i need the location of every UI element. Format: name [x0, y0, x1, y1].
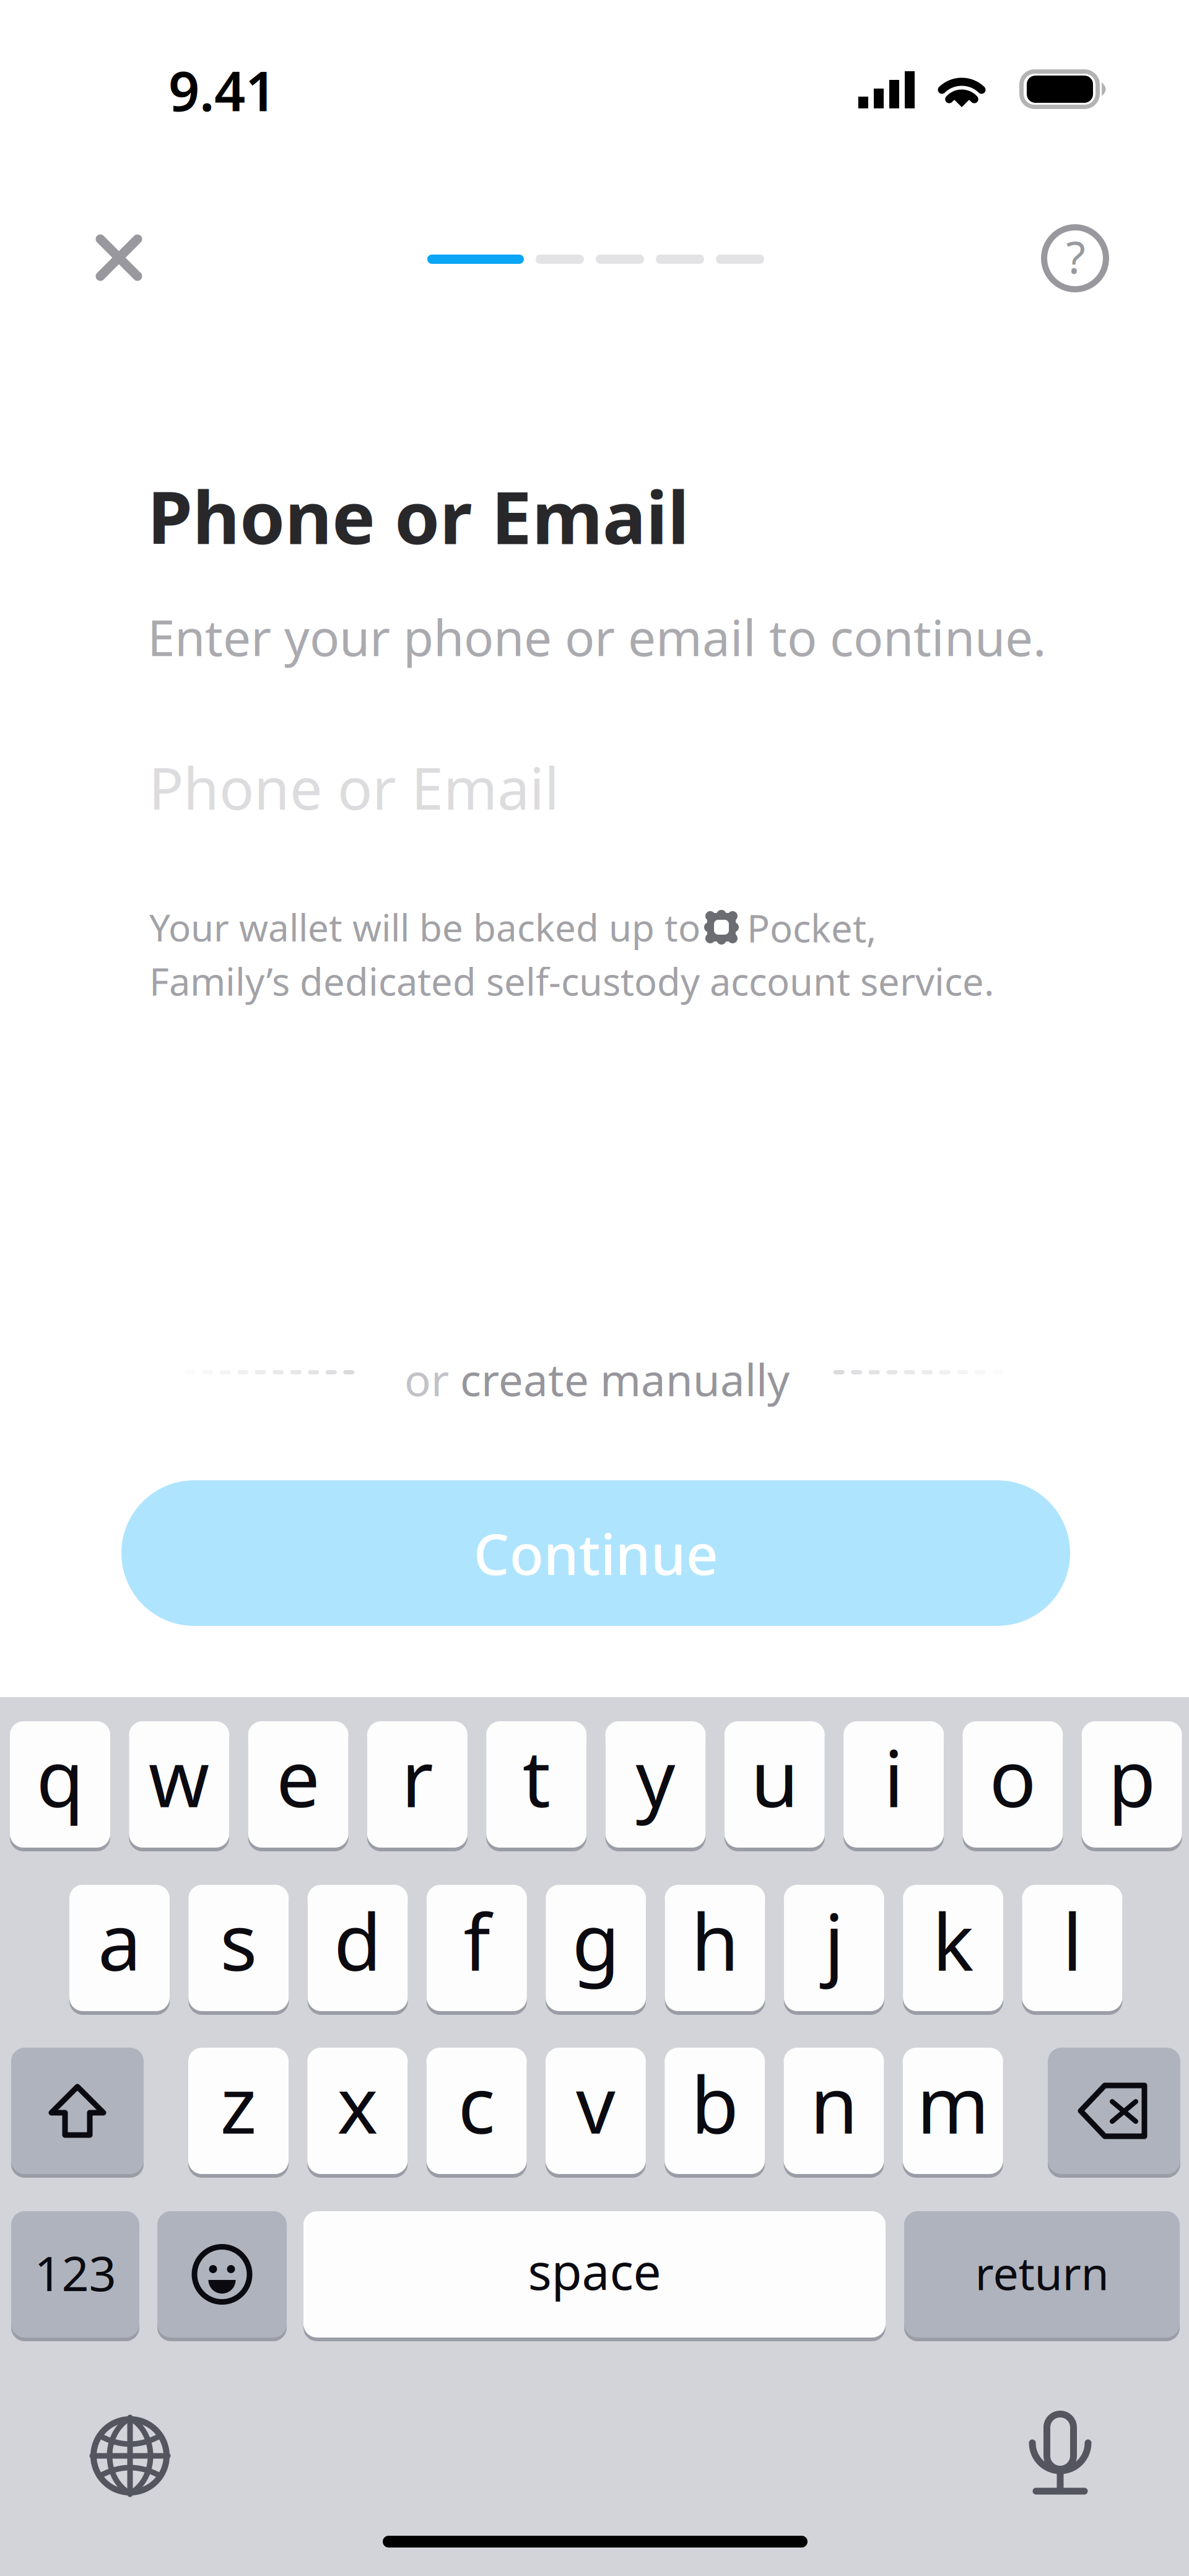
button[interactable]: Shift [11, 2048, 144, 2178]
staticText: l [1062, 1889, 1082, 1992]
staticText: g [572, 1889, 620, 1992]
staticText: f [463, 1889, 490, 1992]
button[interactable]: g [546, 1885, 646, 2015]
staticText: h [691, 1889, 739, 1992]
button[interactable]: s [188, 1885, 289, 2015]
staticText: space [528, 2238, 661, 2304]
button[interactable]: Phone or Email [0, 741, 1189, 834]
button[interactable]: r [367, 1721, 467, 1851]
staticText: r [401, 1725, 433, 1829]
staticText: c [458, 2052, 495, 2155]
staticText: or [404, 1350, 460, 1408]
staticText: Your wallet will be backed up to [149, 902, 700, 952]
staticText: return [975, 2242, 1109, 2303]
staticText: k [932, 1889, 974, 1992]
button[interactable]: m [903, 2048, 1003, 2178]
button[interactable]: x [307, 2048, 408, 2178]
staticText: Enter your phone or email to continue. [147, 604, 1046, 670]
button[interactable]: Help [1041, 224, 1109, 292]
staticText: p [1108, 1725, 1156, 1829]
staticText: Phone or Email [149, 749, 559, 826]
button[interactable]: d [308, 1885, 408, 2015]
staticText: m [917, 2052, 989, 2155]
staticText: s [220, 1889, 257, 1992]
button[interactable]: l [1022, 1885, 1122, 2015]
button[interactable]: o [963, 1721, 1063, 1851]
button[interactable]: c [426, 2048, 527, 2178]
button[interactable]: return [904, 2211, 1180, 2341]
button[interactable]: u [724, 1721, 825, 1851]
staticText: ? [1066, 227, 1085, 286]
staticText: t [522, 1725, 550, 1829]
button[interactable]: Dictation [1029, 2411, 1092, 2495]
button[interactable]: create manually [460, 1350, 790, 1408]
button[interactable]: k [903, 1885, 1003, 2015]
staticText: Pocket, [747, 902, 876, 953]
staticText: x [337, 2052, 378, 2155]
staticText: create manually [460, 1350, 790, 1408]
button[interactable]: space [303, 2211, 886, 2341]
staticText: j [824, 1889, 844, 1992]
staticText: q [36, 1725, 84, 1829]
staticText: n [810, 2052, 858, 2155]
button[interactable]: z [188, 2048, 289, 2178]
button[interactable]: 123 [11, 2211, 139, 2341]
button[interactable]: n [784, 2048, 884, 2178]
button[interactable]: p [1082, 1721, 1182, 1851]
button[interactable]: y [605, 1721, 706, 1851]
staticText: z [220, 2052, 257, 2155]
staticText: y [636, 1725, 675, 1829]
button[interactable]: e [248, 1721, 348, 1851]
staticText: Family’s dedicated self-custody account … [149, 956, 994, 1006]
button[interactable]: v [546, 2048, 646, 2178]
staticText: b [691, 2052, 739, 2155]
staticText: e [276, 1725, 320, 1829]
staticText: v [576, 2052, 615, 2155]
button[interactable]: f [427, 1885, 527, 2015]
button[interactable]: Continue [121, 1480, 1070, 1626]
button[interactable]: b [665, 2048, 765, 2178]
staticText: Phone or Email [147, 468, 689, 564]
staticText: o [989, 1725, 1036, 1829]
button[interactable]: w [129, 1721, 229, 1851]
button[interactable]: Emoji [157, 2211, 287, 2341]
staticText: w [149, 1725, 210, 1829]
staticText: Continue [473, 1516, 718, 1590]
staticText: i [884, 1725, 904, 1829]
staticText: 123 [34, 2241, 116, 2304]
button[interactable]: i [844, 1721, 944, 1851]
button[interactable]: Next keyboard [90, 2416, 170, 2495]
staticText: a [98, 1889, 141, 1992]
button[interactable]: Delete [1048, 2048, 1180, 2178]
button[interactable]: h [665, 1885, 765, 2015]
button[interactable]: t [486, 1721, 587, 1851]
staticText: u [751, 1725, 798, 1829]
button[interactable]: a [69, 1885, 170, 2015]
staticText: 9.41 [168, 54, 276, 126]
staticText: d [334, 1889, 382, 1992]
button[interactable]: Close [84, 223, 154, 292]
button[interactable]: q [10, 1721, 110, 1851]
button[interactable]: j [784, 1885, 884, 2015]
